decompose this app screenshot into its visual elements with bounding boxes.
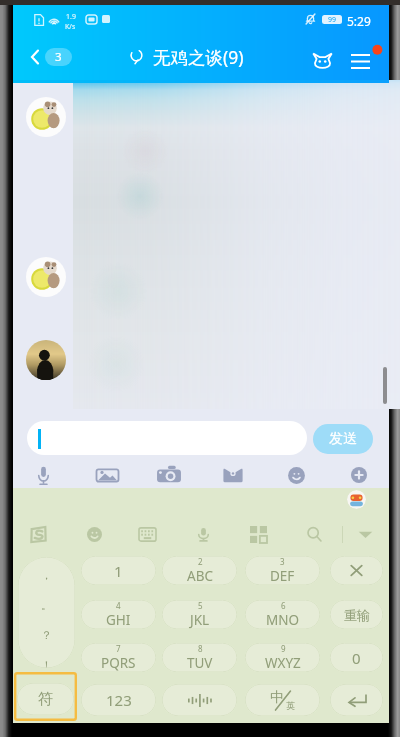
button[interactable]: Sogou input [25,521,51,547]
staticText: TUV [187,654,213,672]
staticText: 5:29 [347,13,371,29]
staticText: 7 [116,643,121,654]
staticText: 4 [116,600,121,611]
button[interactable]: Voice message [27,459,59,491]
button[interactable]: Emoji [280,459,312,491]
button[interactable]: PQRS [81,643,156,672]
button[interactable]: DEF [245,556,320,585]
button[interactable]: Search [301,521,327,547]
staticText: 无鸡之谈(9) [153,45,244,69]
button[interactable]: Voice [162,684,237,716]
staticText: 3 [280,556,285,567]
button[interactable]: Red packet [217,459,249,491]
staticText: 5 [198,600,203,611]
button[interactable]: 123 [81,684,156,716]
staticText: 2 [198,556,203,567]
button[interactable]: 1 [81,556,156,585]
button[interactable]: Back, 3 unread [24,33,80,80]
staticText: K/s [65,22,76,32]
button[interactable]: Delete [330,556,383,585]
staticText: MNO [266,611,300,629]
staticText: 重输 [344,607,370,623]
staticText: 符 [38,690,53,709]
staticText: 3 [55,49,62,65]
staticText: ？ [41,628,52,642]
button[interactable]: TUV [162,643,237,672]
button[interactable]: More [343,459,375,491]
button[interactable]: WXYZ [245,643,320,672]
staticText: 发送 [329,430,357,448]
button[interactable]: Photos [91,459,123,491]
staticText: 1 [114,561,123,581]
button[interactable]: MNO [245,600,320,629]
button[interactable]: Hide keyboard [352,521,378,547]
button[interactable]: 中英 [245,684,320,716]
button[interactable]: Emoji [81,521,107,547]
staticText: WXYZ [265,654,301,672]
staticText: ABC [187,567,213,585]
staticText: 中 [270,689,284,707]
button[interactable]: More tools [245,521,271,547]
staticText: 英 [286,700,295,711]
button[interactable]: 符 [17,683,74,715]
button[interactable]: JKL [162,600,237,629]
button[interactable]: ABC [162,556,237,585]
staticText: ！ [41,658,52,668]
staticText: 8 [198,643,203,654]
button[interactable]: Keyboard layout [134,521,160,547]
staticText: 6 [281,600,286,611]
button[interactable]: 发送 [313,424,373,454]
staticText: 1.9 [66,12,76,22]
staticText: DEF [270,567,295,585]
button[interactable]: 0 [330,643,383,672]
staticText: PQRS [101,654,136,672]
staticText: JKL [190,611,210,629]
button[interactable]: Message input [27,421,307,455]
staticText: 99 [328,15,337,24]
staticText: 9 [281,643,286,654]
staticText: 123 [106,690,132,710]
staticText: GHI [106,611,131,629]
staticText: 。 [41,598,52,612]
staticText: 0 [352,648,361,668]
button[interactable]: Group profile [305,43,339,77]
button[interactable]: Voice input [190,521,216,547]
button[interactable]: Avatar [26,97,66,137]
button[interactable]: Sticker shop [347,490,366,509]
button[interactable]: GHI [81,600,156,629]
staticText: ， [41,568,52,582]
button[interactable]: Punctuation [18,557,75,668]
button[interactable]: Enter [330,684,383,716]
button[interactable]: Avatar [26,257,66,297]
button[interactable]: Menu [345,39,383,79]
button[interactable]: Camera [153,459,185,491]
button[interactable]: Avatar [26,340,66,380]
button[interactable]: 重输 [330,600,383,629]
